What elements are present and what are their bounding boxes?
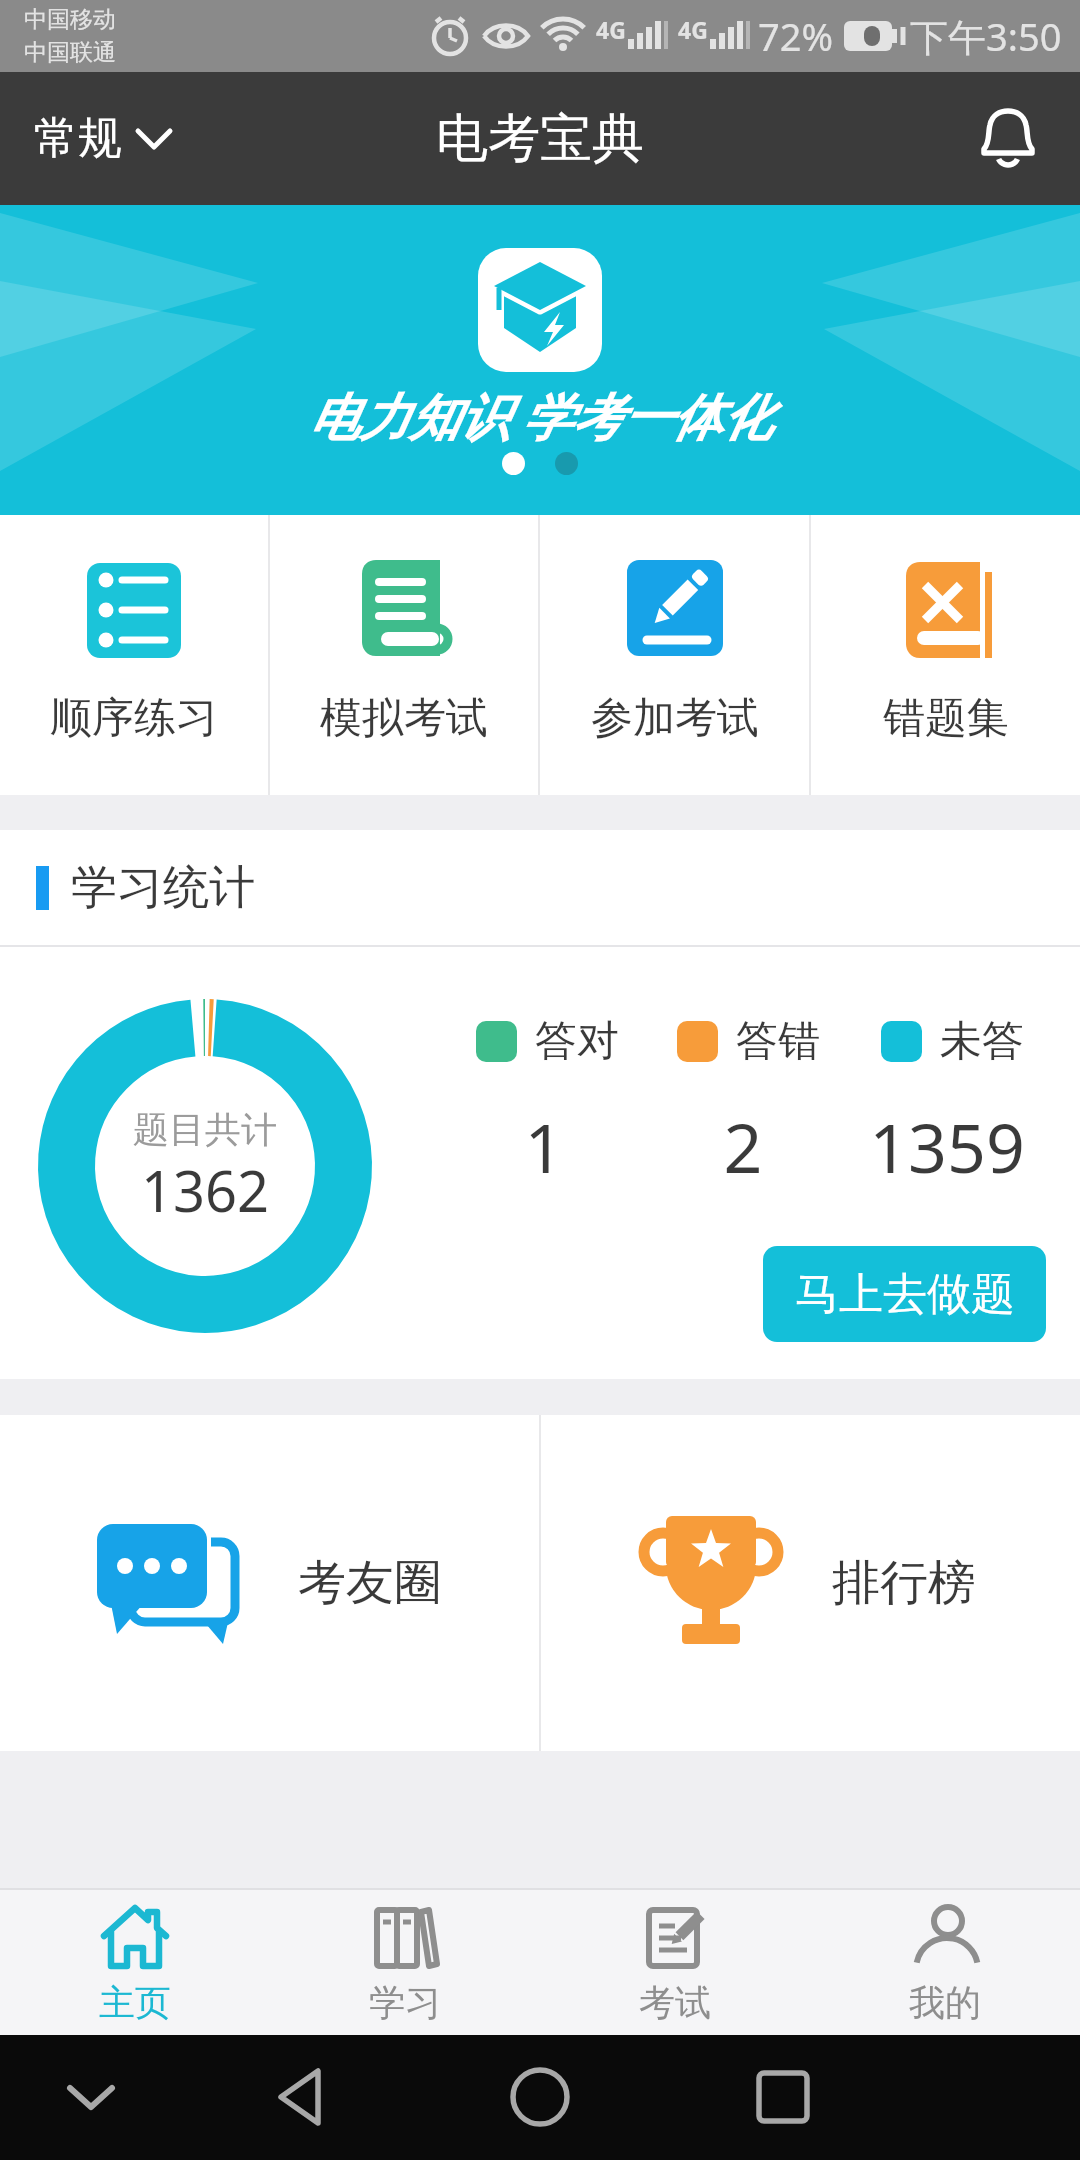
staticText: 72%	[758, 10, 834, 62]
button[interactable]: 错题集	[811, 515, 1080, 795]
button[interactable]: 考友圈	[0, 1415, 539, 1751]
staticText: 2	[663, 1100, 823, 1193]
button[interactable]	[976, 107, 1040, 171]
button[interactable]: 学习	[270, 1890, 540, 2035]
staticText: 学习	[369, 1980, 441, 2025]
button[interactable]: 常规	[34, 111, 172, 166]
button[interactable]: 参加考试	[540, 515, 809, 795]
staticText: 电考宝典	[436, 106, 644, 172]
staticText: 中国联通	[24, 38, 116, 67]
button[interactable]: 模拟考试	[270, 515, 538, 795]
button[interactable]	[490, 2063, 590, 2133]
staticText: 未答	[940, 1015, 1024, 1068]
staticText: 考试	[639, 1980, 711, 2025]
staticText: 主页	[99, 1980, 171, 2025]
staticText: 答错	[736, 1015, 820, 1068]
button[interactable]: 顺序练习	[0, 515, 268, 795]
button[interactable]	[733, 2063, 833, 2133]
button[interactable]: 主页	[0, 1890, 270, 2035]
button[interactable]	[255, 2063, 355, 2133]
staticText: 题目共计	[133, 1107, 277, 1152]
staticText: 下午3:50	[910, 10, 1062, 62]
staticText: 1	[464, 1100, 624, 1193]
button[interactable]: 排行榜	[541, 1415, 1080, 1751]
staticText: 模拟考试	[320, 692, 488, 745]
staticText: 错题集	[883, 692, 1009, 745]
button[interactable]	[40, 2063, 140, 2133]
staticText: 4G	[678, 14, 708, 45]
staticText: 常规	[34, 111, 122, 166]
staticText: 参加考试	[591, 692, 759, 745]
staticText: 电力知识 学考一体化	[309, 382, 772, 450]
staticText: 答对	[535, 1015, 619, 1068]
button[interactable]: 我的	[810, 1890, 1080, 2035]
staticText: 排行榜	[832, 1553, 976, 1613]
button[interactable]: 马上去做题	[763, 1246, 1046, 1342]
button[interactable]: 考试	[540, 1890, 810, 2035]
staticText: 学习统计	[71, 859, 255, 917]
staticText: 1359	[847, 1100, 1047, 1193]
staticText: 4G	[596, 14, 626, 45]
staticText: 我的	[909, 1980, 981, 2025]
staticText: 中国移动	[24, 5, 116, 38]
staticText: 1362	[141, 1152, 270, 1228]
staticText: 考友圈	[298, 1553, 442, 1613]
staticText: 马上去做题	[795, 1267, 1015, 1322]
staticText: 顺序练习	[50, 692, 218, 745]
